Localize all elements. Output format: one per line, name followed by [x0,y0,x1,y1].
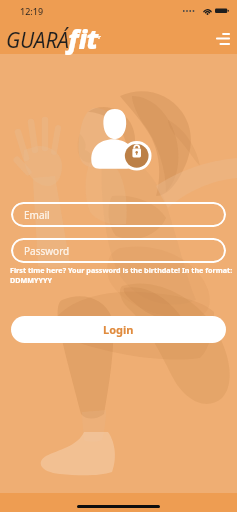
button[interactable]: Login [11,316,226,343]
button[interactable]: Email [11,202,226,227]
button[interactable]: Menu [209,25,237,53]
staticText: Login [103,322,134,337]
staticText: GUARÁ [6,26,69,55]
staticText: Email [24,208,50,222]
staticText: ʳ [98,31,101,45]
button[interactable]: Password [11,238,226,263]
staticText: Password [24,244,70,258]
staticText: 12:19 [20,5,44,17]
staticText: First time here? Your password is the bi… [10,265,233,285]
staticText: fit [68,21,98,56]
